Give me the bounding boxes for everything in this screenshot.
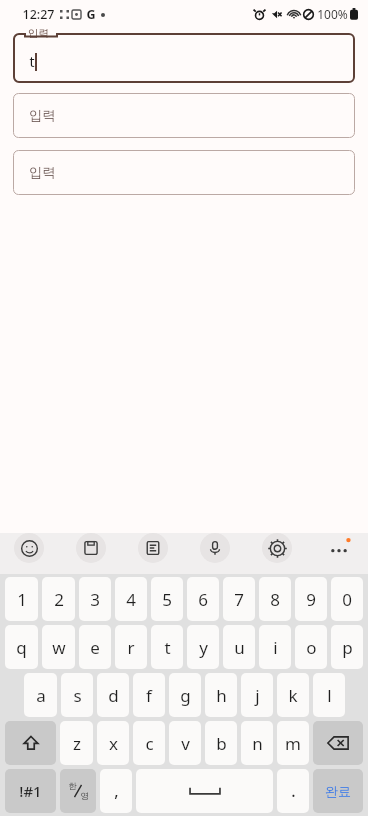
staticText: !#1 [19, 781, 42, 801]
staticText: 7 [234, 588, 244, 611]
button[interactable]: m [277, 721, 309, 765]
staticText: u [234, 636, 245, 659]
staticText: , [114, 780, 119, 802]
staticText: 영 [80, 791, 89, 802]
staticText: 한 [68, 781, 77, 792]
staticText: 9 [306, 588, 316, 611]
button[interactable]: r [115, 625, 147, 669]
button[interactable]: l [313, 673, 345, 717]
button[interactable]: s [61, 673, 93, 717]
button[interactable]: b [205, 721, 237, 765]
staticText: 0 [342, 588, 352, 611]
staticText: j [255, 684, 260, 707]
button[interactable]: x [97, 721, 129, 765]
button[interactable]: o [295, 625, 327, 669]
button[interactable]: Shift [5, 721, 56, 765]
button[interactable]: . [277, 769, 309, 813]
staticText: 6 [198, 588, 208, 611]
staticText: s [73, 684, 82, 707]
staticText: l [327, 684, 332, 707]
button[interactable]: q [5, 625, 38, 669]
staticText: p [342, 636, 353, 659]
button[interactable]: !#1 [5, 769, 56, 813]
button[interactable]: Space [136, 769, 273, 813]
staticText: o [306, 636, 317, 659]
button[interactable]: i [259, 625, 291, 669]
button[interactable]: t [151, 625, 183, 669]
button[interactable]: a [24, 673, 57, 717]
button[interactable]: Backspace [313, 721, 363, 765]
staticText: 5 [162, 588, 172, 611]
button[interactable]: u [223, 625, 255, 669]
button[interactable]: 7 [223, 577, 255, 621]
staticText: g [180, 684, 191, 707]
button[interactable]: Keyboard settings [262, 533, 292, 563]
staticText: a [36, 684, 46, 707]
staticText: t [164, 636, 171, 659]
staticText: . [291, 780, 296, 802]
button[interactable]: Text [138, 533, 168, 563]
button[interactable]: d [97, 673, 129, 717]
staticText: 완료 [325, 783, 351, 799]
button[interactable]: 입력 [13, 150, 355, 195]
button[interactable]: Voice input [200, 533, 230, 563]
staticText: y [199, 636, 208, 659]
button[interactable]: v [169, 721, 201, 765]
staticText: w [52, 636, 66, 659]
button[interactable]: 5 [151, 577, 183, 621]
staticText: 입력 [28, 27, 49, 40]
button[interactable]: p [331, 625, 363, 669]
staticText: 입력 [29, 107, 56, 124]
button[interactable]: y [187, 625, 219, 669]
button[interactable]: Korean English toggle [60, 769, 96, 813]
button[interactable]: 완료 [313, 769, 363, 813]
staticText: b [216, 732, 227, 755]
button[interactable]: g [169, 673, 201, 717]
staticText: n [252, 732, 263, 755]
staticText: 입력 [29, 164, 56, 181]
staticText: i [273, 636, 278, 659]
button[interactable]: h [205, 673, 237, 717]
button[interactable]: 6 [187, 577, 219, 621]
button[interactable]: 0 [331, 577, 363, 621]
button[interactable]: 3 [79, 577, 111, 621]
staticText: 2 [54, 588, 64, 611]
button[interactable]: w [42, 625, 75, 669]
button[interactable]: j [241, 673, 273, 717]
staticText: q [16, 636, 27, 659]
button[interactable]: 8 [259, 577, 291, 621]
button[interactable]: 2 [42, 577, 75, 621]
staticText: 8 [270, 588, 280, 611]
staticText: 4 [126, 588, 136, 611]
staticText: 100% [317, 6, 348, 22]
staticText: x [109, 732, 118, 755]
staticText: e [90, 636, 100, 659]
staticText: v [181, 732, 190, 755]
staticText: h [216, 684, 227, 707]
button[interactable]: Clipboard [76, 533, 106, 563]
button[interactable]: 9 [295, 577, 327, 621]
button[interactable]: More options [324, 533, 354, 563]
button[interactable]: 1 [5, 577, 38, 621]
button[interactable]: Emoji [14, 533, 44, 563]
staticText: f [146, 684, 152, 707]
button[interactable]: z [60, 721, 93, 765]
button[interactable]: c [133, 721, 165, 765]
staticText: m [285, 732, 301, 755]
staticText: z [73, 732, 81, 755]
button[interactable]: e [79, 625, 111, 669]
button[interactable]: , [100, 769, 132, 813]
button[interactable]: k [277, 673, 309, 717]
staticText: 3 [90, 588, 100, 611]
staticText: r [127, 636, 135, 659]
staticText: d [108, 684, 119, 707]
staticText: k [288, 684, 298, 707]
button[interactable]: n [241, 721, 273, 765]
button[interactable]: 입력 [13, 93, 355, 138]
staticText: 1 [17, 588, 27, 611]
button[interactable]: f [133, 673, 165, 717]
button[interactable]: 4 [115, 577, 147, 621]
staticText: G [86, 6, 96, 23]
staticText: 12:27 [22, 6, 55, 23]
button[interactable]: 입력 [13, 33, 355, 83]
